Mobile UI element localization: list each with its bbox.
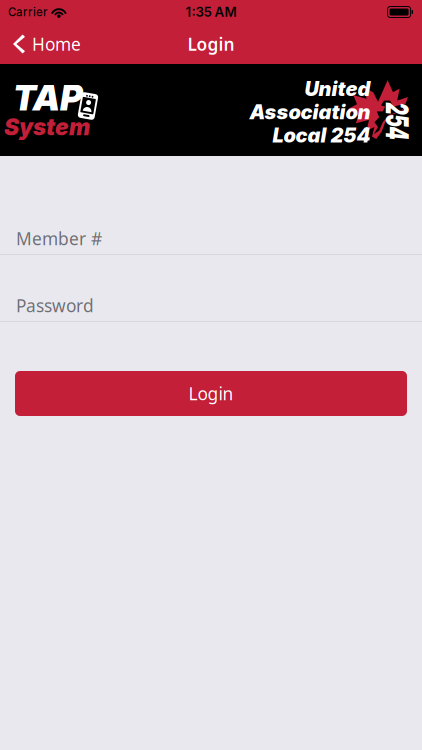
button[interactable]: Member # — [0, 211, 422, 255]
staticText: 1:35 AM — [185, 4, 236, 20]
staticText: Carrier — [8, 5, 47, 19]
button[interactable]: Login — [0, 371, 422, 416]
staticText: Login — [188, 382, 233, 405]
button[interactable]: Password — [0, 278, 422, 322]
staticText: Login — [187, 32, 234, 55]
staticText: System — [4, 113, 90, 141]
staticText: United — [304, 77, 370, 101]
staticText: Association — [249, 100, 370, 124]
staticText: Local 254 — [272, 123, 370, 147]
button[interactable]: Home — [0, 24, 93, 64]
staticText: 254 — [367, 102, 422, 139]
staticText: Password — [16, 294, 94, 317]
staticText: Home — [32, 32, 81, 55]
staticText: TAP — [13, 77, 83, 119]
staticText: Member # — [16, 227, 102, 250]
